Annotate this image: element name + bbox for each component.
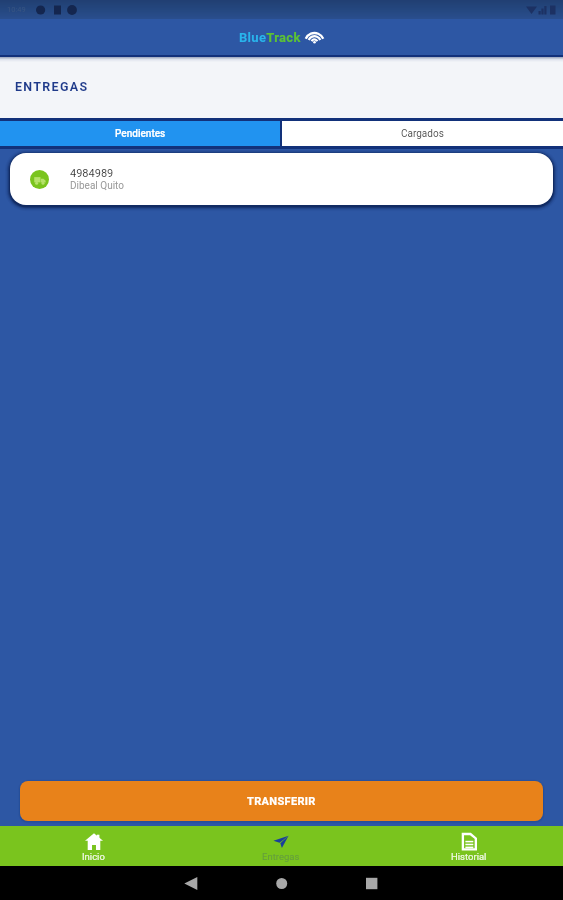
button[interactable]: 4984989 [10,153,553,205]
other: Entregas [272,833,290,850]
staticText: 10:49 [7,5,26,14]
other: Inicio [85,833,103,850]
staticText: Pendientes [115,128,166,140]
staticText: BlueTrack [239,30,301,45]
staticText: Inicio [82,851,105,862]
button[interactable]: Entregas [187,826,375,866]
staticText: Cargados [401,128,444,140]
staticText: Entregas [262,851,300,862]
button[interactable]: Historial [375,826,563,866]
staticText: Dibeal Quito [70,180,124,192]
staticText: Historial [451,851,487,862]
button[interactable]: Pendientes [0,121,280,146]
button[interactable]: Inicio [0,826,187,866]
staticText: TRANSFERIR [247,795,316,808]
staticText: ENTREGAS [15,79,89,94]
button[interactable]: TRANSFERIR [20,781,543,821]
other: Historial [460,833,478,850]
staticText: 4984989 [70,167,114,180]
button[interactable]: Cargados [282,121,563,146]
